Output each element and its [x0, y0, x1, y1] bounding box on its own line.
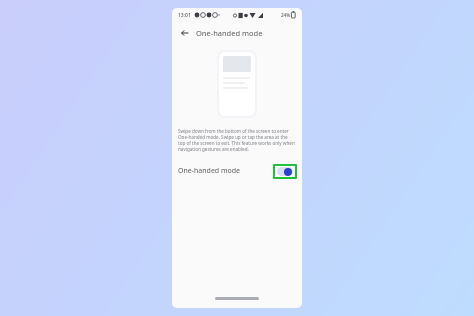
button[interactable]: One-handed mode — [172, 161, 302, 181]
staticText: 24% — [281, 12, 290, 18]
other: One-handed mode switch, on — [277, 167, 293, 176]
button[interactable]: Back — [178, 26, 192, 40]
staticText: One-handed mode — [196, 28, 263, 38]
staticText: Swipe down from the bottom of the screen… — [178, 128, 296, 152]
staticText: 13:01 — [178, 12, 191, 19]
staticText: One-handed mode — [178, 166, 240, 176]
